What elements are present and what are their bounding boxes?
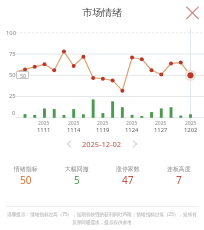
staticText: 温馨提示：情绪指标过高（75），短期有较强的获利回吐风险；情绪指标过低（25），… xyxy=(6,211,198,225)
button[interactable]: 连板高度 xyxy=(153,163,204,185)
staticText: 50 xyxy=(20,173,32,187)
staticText: 1111 xyxy=(37,126,51,134)
staticText: 1202 xyxy=(184,126,198,134)
staticText: 涨停家数 xyxy=(116,165,140,172)
staticText: 2025 xyxy=(38,120,50,127)
staticText: 2025 xyxy=(97,120,109,127)
button[interactable]: 涨停家数 xyxy=(102,163,153,185)
button[interactable]: Previous day xyxy=(62,137,76,151)
staticText: 47 xyxy=(122,173,134,187)
staticText: 100 xyxy=(6,29,16,37)
button[interactable]: 情绪指标 xyxy=(0,163,51,185)
staticText: 0 xyxy=(12,109,16,117)
staticText: 7 xyxy=(176,173,182,187)
staticText: 市场情绪 xyxy=(82,6,122,19)
staticText: 25 xyxy=(9,92,16,100)
staticText: 50 xyxy=(9,71,16,79)
staticText: 大幅回撤 xyxy=(65,165,89,172)
button[interactable]: Next day xyxy=(128,137,142,151)
staticText: 75 xyxy=(9,50,16,58)
staticText: 2025-12-02 xyxy=(82,139,122,149)
staticText: 2025 xyxy=(126,120,138,127)
staticText: 1127 xyxy=(154,126,168,134)
staticText: 5 xyxy=(74,173,80,187)
staticText: 1114 xyxy=(67,126,81,134)
staticText: 2025 xyxy=(155,120,167,127)
staticText: 1119 xyxy=(96,126,110,134)
staticText: 1124 xyxy=(125,126,139,134)
staticText: 2025 xyxy=(185,120,197,127)
button[interactable]: 大幅回撤 xyxy=(51,163,102,185)
button[interactable]: Close xyxy=(183,3,202,22)
button[interactable]: 市场情绪 xyxy=(74,2,130,22)
staticText: 情绪指标 xyxy=(14,165,38,172)
staticText: 2025 xyxy=(68,120,80,127)
staticText: 连板高度 xyxy=(167,165,191,172)
staticText: 50 xyxy=(20,72,26,79)
